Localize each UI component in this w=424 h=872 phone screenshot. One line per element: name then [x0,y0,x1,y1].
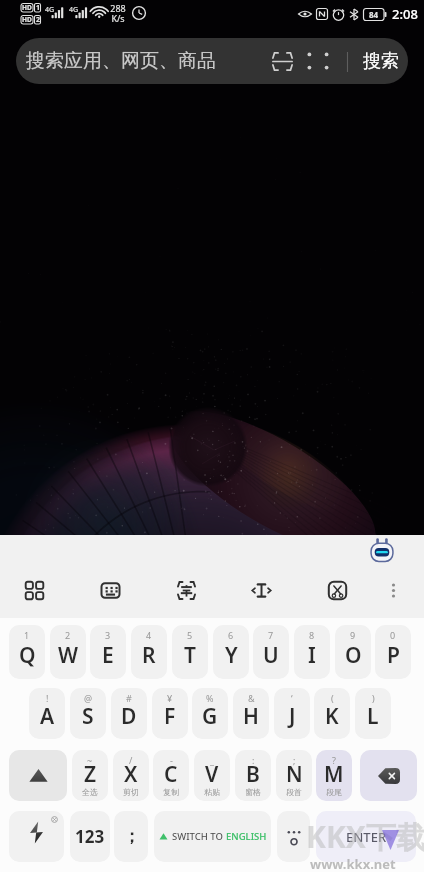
button[interactable]: Search by image [302,43,334,79]
button[interactable]: Keyboard [89,570,131,611]
staticText: 0 [390,629,396,641]
staticText: N [286,760,303,789]
staticText: _ [210,754,214,766]
button[interactable]: 8 [294,625,330,679]
button[interactable]: _ [194,750,230,801]
button[interactable]: 搜索 [354,38,408,84]
button[interactable]: 9 [335,625,371,679]
staticText: & [248,692,255,704]
staticText: E [102,641,114,670]
staticText: 窗格 [245,787,261,797]
button[interactable]: ~ [72,750,108,801]
button[interactable]: 2 [50,625,86,679]
staticText: @ [84,692,93,704]
button[interactable]: ! [29,688,65,739]
button[interactable]: ¥ [152,688,188,739]
staticText: 123 [75,825,105,848]
staticText: M [324,760,344,789]
staticText: 4 [146,629,152,641]
button[interactable]: @ [70,688,106,739]
button[interactable]: 3 [90,625,126,679]
button[interactable]: # [111,688,147,739]
staticText: ENTER [346,828,387,846]
staticText: W [58,641,79,670]
button[interactable]: 搜索应用、网页、商品 [16,38,408,84]
staticText: X [124,760,138,789]
button[interactable]: Cursor [240,570,282,611]
button[interactable]: - [153,750,189,801]
button[interactable]: ; [276,750,312,801]
staticText: ? [332,754,336,766]
staticText: ‘ [291,692,293,704]
staticText: 5 [187,629,193,641]
button[interactable]: 123 [70,811,110,862]
staticText: R [142,641,156,670]
staticText: 2:08 [392,5,418,23]
button[interactable]: Clipboard [316,570,358,611]
staticText: G [202,702,218,731]
staticText: F [164,702,176,731]
staticText: B [246,760,260,789]
staticText: L [367,702,379,731]
button[interactable]: Voice [277,811,310,862]
staticText: Z [84,760,97,789]
staticText: J [289,702,296,731]
staticText: 段首 [286,787,302,797]
button[interactable]: 6 [213,625,249,679]
staticText: O [345,641,362,670]
staticText: Y [225,641,238,670]
staticText: ¥ [167,692,173,704]
staticText: K [325,702,339,731]
button[interactable]: 1 [9,625,45,679]
staticText: V [205,760,219,789]
staticText: 剪切 [123,787,139,797]
button[interactable]: / [113,750,149,801]
button[interactable]: % [192,688,228,739]
button[interactable]: Handwriting [165,570,207,611]
button[interactable]: Assistant [369,538,395,564]
staticText: HD [22,3,32,12]
staticText: 搜索 [363,50,399,73]
staticText: U [263,641,279,670]
staticText: 84 [369,9,379,20]
staticText: ENGLISH [226,830,267,843]
staticText: ; [293,754,296,766]
button[interactable]: Shift [9,750,67,801]
button[interactable]: 5 [172,625,208,679]
staticText: I [308,641,316,670]
staticText: 段尾 [326,787,342,797]
button[interactable]: Scan code [266,43,298,79]
button[interactable]: ) [355,688,391,739]
staticText: 2 [36,15,41,25]
button[interactable]: & [233,688,269,739]
button[interactable]: ENTER [316,811,416,862]
staticText: : [252,754,255,766]
staticText: ) [372,692,375,704]
button[interactable]: 0 [375,625,411,679]
button[interactable]: 7 [253,625,289,679]
staticText: 3 [105,629,111,641]
button[interactable]: ‘ [274,688,310,739]
button[interactable]: Backspace [360,750,417,801]
button[interactable]: More [372,570,414,611]
staticText: / [129,754,133,766]
staticText: 9 [350,629,356,641]
button[interactable]: ? [316,750,352,801]
button[interactable]: 4 [131,625,167,679]
staticText: 2 [65,629,71,641]
button[interactable]: SWITCH TO [154,811,271,862]
button[interactable]: Apps [13,570,55,611]
staticText: ； [123,826,140,847]
staticText: 7 [268,629,274,641]
button[interactable]: ( [314,688,350,739]
staticText: C [164,760,178,789]
staticText: 6 [228,629,234,641]
staticText: 288 K/s [110,2,126,24]
button[interactable]: Emoji and stickers [9,811,64,862]
staticText: H [243,702,259,731]
staticText: - [170,754,173,766]
button[interactable]: ； [114,811,148,862]
staticText: S [82,702,94,731]
staticText: ~ [87,754,93,766]
button[interactable]: : [235,750,271,801]
